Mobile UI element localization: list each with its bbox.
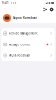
staticText: Message Center xyxy=(9,43,31,46)
staticText: Sapna Karmbvai xyxy=(13,16,37,20)
button[interactable]: Share xyxy=(43,7,47,12)
staticText: FAQ & Feedback xyxy=(9,54,30,57)
button[interactable]: Vehicle Management xyxy=(1,28,54,39)
button[interactable]: FAQ & Feedback xyxy=(1,50,54,61)
staticText: 9:41 xyxy=(2,1,9,5)
staticText: Vehicle Management xyxy=(9,32,38,35)
button[interactable]: Message Center xyxy=(1,39,54,50)
button[interactable]: Settings xyxy=(49,7,54,12)
